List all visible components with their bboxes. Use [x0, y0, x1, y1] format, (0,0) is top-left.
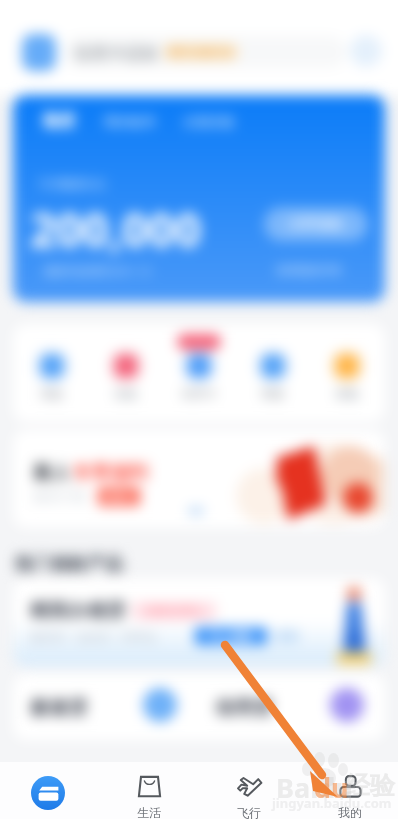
- button[interactable]: 理财: [256, 349, 290, 383]
- staticText: 额度高 放款快 利率低: [30, 628, 157, 644]
- staticText: 我的: [338, 805, 362, 819]
- staticText: jingyan.baidu.com: [272, 794, 392, 812]
- staticText: 我的账单: [104, 113, 156, 129]
- staticText: 限时优惠活动: [168, 45, 234, 59]
- staticText: 分期还款: [183, 113, 235, 129]
- staticText: 信用贷: [215, 696, 272, 720]
- button[interactable]: Borrow now: [264, 207, 368, 241]
- staticText: 查看额度详情: [276, 263, 342, 277]
- button[interactable]: Customer service: [350, 35, 382, 67]
- staticText: 额度: [43, 111, 75, 131]
- staticText: 借款: [40, 386, 64, 400]
- staticText: 飞行: [237, 805, 261, 819]
- staticText: 888元: [104, 489, 134, 504]
- staticText: 生活: [137, 805, 161, 819]
- staticText: 理财: [261, 386, 285, 400]
- staticText: du: [314, 769, 349, 806]
- button[interactable]: 精英白领贷: [13, 578, 385, 666]
- button[interactable]: 我的: [320, 762, 380, 819]
- staticText: 热门借款产品: [15, 553, 123, 576]
- button[interactable]: [13, 674, 199, 740]
- button[interactable]: [64, 36, 346, 68]
- staticText: 信用卡还款: [74, 43, 159, 64]
- button[interactable]: 新人: [13, 430, 385, 528]
- staticText: 保险: [335, 386, 359, 400]
- staticText: Baidu: [276, 769, 353, 806]
- staticText: 新人: [33, 461, 71, 485]
- staticText: 额度有效期至2021-12: [44, 263, 152, 278]
- button[interactable]: 生活: [119, 762, 179, 819]
- staticText: 新客专享礼: [147, 604, 202, 618]
- staticText: 可用额度(元): [38, 175, 106, 191]
- button[interactable]: Profile: [22, 34, 56, 71]
- button[interactable]: 借款: [35, 349, 69, 383]
- button[interactable]: 额度: [13, 95, 385, 302]
- staticText: 经验: [345, 770, 395, 801]
- button[interactable]: Card: [31, 776, 65, 810]
- button[interactable]: 信用卡: [182, 349, 216, 383]
- button[interactable]: 还款: [109, 349, 143, 383]
- staticText: 200,000: [30, 198, 201, 261]
- button[interactable]: 飞行: [219, 762, 279, 819]
- button[interactable]: 保险: [330, 349, 364, 383]
- staticText: 信用卡: [181, 386, 217, 400]
- staticText: 还款: [114, 386, 138, 400]
- staticText: 极速贷: [30, 696, 87, 720]
- button[interactable]: [199, 674, 385, 740]
- staticText: 马上借款: [209, 629, 253, 643]
- staticText: 立即借款: [288, 215, 344, 233]
- staticText: 精英白领贷: [30, 599, 125, 623]
- staticText: 专享福利: [72, 461, 148, 485]
